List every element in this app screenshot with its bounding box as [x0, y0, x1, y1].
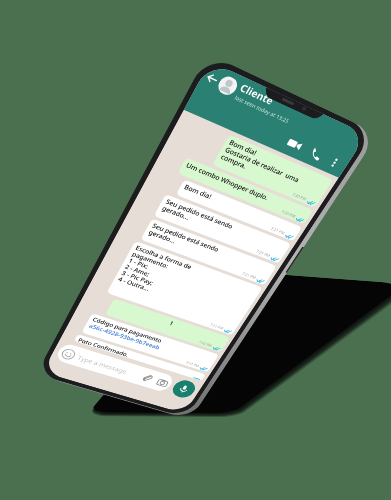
staticText: Type a message [76, 354, 129, 375]
staticText: Código para pagamento [91, 316, 163, 344]
staticText: Seu pedido está sendo gerado... [160, 197, 235, 237]
button[interactable]: Bom dia! Gostaria de realizar uma compra… [212, 134, 333, 208]
staticText: 7:21 PM [269, 226, 286, 236]
button[interactable]: Type a message [54, 342, 176, 393]
button[interactable]: Um combo Whopper duplo. [177, 157, 313, 225]
staticText: Escolha a forma de pagamento: 1 - Pix; 2… [117, 244, 194, 301]
button[interactable]: Código para pagamento [81, 313, 219, 372]
staticText: 7:21 PM [255, 249, 271, 259]
staticText: 7:21 PM [241, 271, 257, 281]
staticText: Bom dia! Gostaria de realizar uma compra… [219, 138, 306, 191]
staticText: Pgto Confirmado. [77, 336, 131, 357]
button[interactable]: Bom dia! [176, 179, 302, 241]
button[interactable]: Seu pedido está sendo gerado... [154, 194, 292, 264]
button[interactable]: Attach [139, 372, 155, 384]
staticText: 7:21 PM [209, 322, 224, 331]
button[interactable]: More options [323, 153, 346, 173]
staticText: 1 [113, 301, 227, 344]
staticText: a56c-4928-93be-9b7eeab [88, 322, 161, 351]
button[interactable]: Seu pedido está sendo gerado... [140, 218, 277, 285]
button[interactable]: Escolha a forma de pagamento: 1 - Pix; 2… [106, 241, 263, 335]
staticText: last seen today at 13:25 [234, 93, 291, 124]
staticText: 7:22 PM [198, 340, 213, 348]
button[interactable]: Back [202, 69, 222, 88]
button[interactable]: Video call [281, 132, 308, 156]
staticText: 7:22 PM [185, 360, 200, 369]
staticText: 7:20 PM [280, 209, 297, 219]
button[interactable]: Camera [154, 376, 170, 388]
staticText: Bom dia! [183, 182, 214, 201]
staticText: Seu pedido está sendo gerado... [147, 221, 221, 260]
staticText: 7:20 PM [291, 192, 308, 202]
button[interactable]: Pgto Confirmado. [74, 334, 206, 381]
button[interactable]: 1 [105, 298, 230, 352]
button[interactable]: Voice call [303, 142, 330, 166]
staticText: Cliente [237, 81, 277, 108]
staticText: Um combo Whopper duplo. [184, 161, 270, 202]
button[interactable]: Voice message [169, 378, 199, 400]
